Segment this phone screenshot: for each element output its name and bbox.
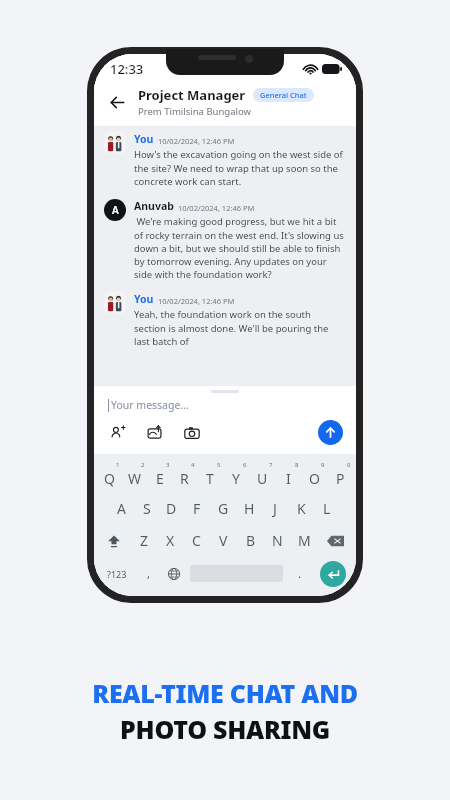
staticText: Your message... xyxy=(111,398,189,412)
button[interactable]: K xyxy=(288,492,314,524)
staticText: Y xyxy=(232,469,240,488)
staticText: B xyxy=(246,531,256,550)
staticText: Yeah, the foundation work on the south s… xyxy=(134,308,344,347)
button[interactable]: Camera xyxy=(182,423,202,443)
staticText: 8 xyxy=(295,461,299,469)
staticText: Prem Timilsina Bungalow xyxy=(138,105,251,118)
staticText: 9 xyxy=(321,461,325,469)
button[interactable]: Z xyxy=(131,524,157,557)
staticText: How's the excavation going on the west s… xyxy=(134,148,344,187)
staticText: T xyxy=(206,469,214,488)
button[interactable]: S xyxy=(134,492,159,524)
button[interactable]: N xyxy=(264,524,291,557)
staticText: I xyxy=(286,469,291,488)
staticText: A xyxy=(117,499,126,518)
staticText: 3 xyxy=(166,461,170,469)
staticText: . xyxy=(298,566,301,581)
staticText: Q xyxy=(104,469,115,488)
button[interactable]: Send xyxy=(318,420,343,445)
button[interactable]: 6 xyxy=(223,460,249,492)
button[interactable]: J xyxy=(262,492,288,524)
staticText: C xyxy=(192,531,201,550)
button[interactable]: Backspace xyxy=(318,524,353,557)
staticText: REAL-TIME CHAT AND xyxy=(92,676,358,710)
staticText: V xyxy=(219,531,228,550)
staticText: M xyxy=(298,531,311,550)
button[interactable]: M xyxy=(291,524,318,557)
staticText: K xyxy=(297,499,306,518)
staticText: X xyxy=(166,531,175,550)
staticText: A xyxy=(112,203,119,217)
staticText: 12:33 xyxy=(110,60,144,78)
button[interactable]: 8 xyxy=(275,460,301,492)
staticText: G xyxy=(218,499,229,518)
staticText: 1 xyxy=(116,461,120,469)
button[interactable]: 5 xyxy=(197,460,223,492)
button[interactable]: General Chat xyxy=(253,88,314,102)
button[interactable]: L xyxy=(314,492,340,524)
staticText: Z xyxy=(140,531,149,550)
button[interactable]: Back xyxy=(102,87,132,117)
button[interactable]: You xyxy=(94,292,356,347)
staticText: 0 xyxy=(347,461,351,469)
button[interactable]: 9 xyxy=(301,460,327,492)
staticText: 2 xyxy=(141,461,145,469)
staticText: 7 xyxy=(269,461,273,469)
staticText: 6 xyxy=(243,461,247,469)
staticText: J xyxy=(273,499,277,518)
button[interactable]: F xyxy=(184,492,210,524)
staticText: 5 xyxy=(217,461,221,469)
staticText: General Chat xyxy=(260,90,307,100)
button[interactable]: You xyxy=(94,132,356,187)
staticText: , xyxy=(147,566,150,581)
button[interactable]: H xyxy=(236,492,262,524)
button[interactable]: 2 xyxy=(122,460,147,492)
staticText: PHOTO SHARING xyxy=(120,712,330,746)
button[interactable]: Add people xyxy=(108,423,128,443)
button[interactable]: 1 xyxy=(97,460,122,492)
staticText: 10/02/2024, 12:46 PM xyxy=(178,203,255,213)
button[interactable]: Upload image xyxy=(145,423,165,443)
button[interactable]: Shift xyxy=(97,524,131,557)
button[interactable]: D xyxy=(159,492,184,524)
staticText: Anuvab xyxy=(134,199,174,213)
staticText: R xyxy=(180,469,189,488)
staticText: P xyxy=(336,469,345,488)
staticText: ?123 xyxy=(107,568,127,580)
staticText: F xyxy=(193,499,201,518)
staticText: H xyxy=(244,499,255,518)
staticText: 10/02/2024, 12:46 PM xyxy=(158,296,235,306)
staticText: You xyxy=(134,292,154,306)
button[interactable]: G xyxy=(210,492,236,524)
button[interactable]: Enter xyxy=(320,561,346,587)
staticText: N xyxy=(272,531,283,550)
button[interactable]: 3 xyxy=(147,460,172,492)
staticText: U xyxy=(257,469,268,488)
staticText: We're making good progress, but we hit a… xyxy=(134,215,344,280)
button[interactable]: 4 xyxy=(172,460,197,492)
button[interactable]: ?123 xyxy=(97,557,136,590)
button[interactable]: . xyxy=(287,557,312,590)
staticText: D xyxy=(166,499,177,518)
staticText: You xyxy=(134,132,154,146)
button[interactable]: 7 xyxy=(249,460,275,492)
staticText: O xyxy=(309,469,320,488)
staticText: E xyxy=(156,469,164,488)
staticText: 10/02/2024, 12:46 PM xyxy=(158,136,235,146)
staticText: L xyxy=(323,499,331,518)
button[interactable]: , xyxy=(136,557,161,590)
staticText: 4 xyxy=(191,461,195,469)
staticText: S xyxy=(143,499,151,518)
staticText: W xyxy=(128,469,142,488)
button[interactable]: B xyxy=(237,524,264,557)
button[interactable]: X xyxy=(157,524,183,557)
button[interactable]: A xyxy=(109,492,134,524)
button[interactable]: Change language xyxy=(161,557,186,590)
button[interactable]: A xyxy=(94,199,356,280)
button[interactable]: C xyxy=(183,524,210,557)
button[interactable]: 0 xyxy=(327,460,353,492)
button[interactable]: V xyxy=(210,524,237,557)
staticText: Project Manager xyxy=(138,86,246,104)
